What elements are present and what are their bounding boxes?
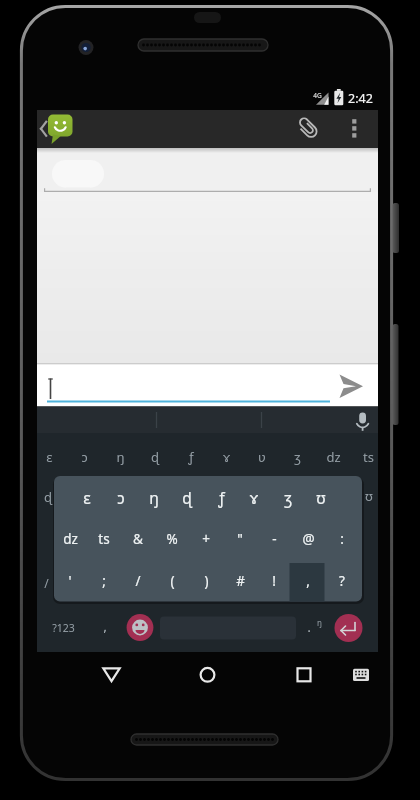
button[interactable] xyxy=(189,520,223,560)
button[interactable] xyxy=(45,612,85,645)
staticText: ts xyxy=(98,530,110,548)
button[interactable] xyxy=(126,612,154,645)
staticText: ƒ xyxy=(188,448,194,466)
button[interactable] xyxy=(155,562,189,601)
staticText: ʊ xyxy=(316,487,326,508)
button[interactable] xyxy=(53,520,87,560)
staticText: , xyxy=(103,618,107,634)
button[interactable] xyxy=(87,520,121,560)
staticText: % xyxy=(166,530,178,548)
button[interactable] xyxy=(242,440,276,475)
staticText: ɛ xyxy=(46,448,53,466)
button[interactable] xyxy=(137,478,170,518)
button[interactable] xyxy=(92,658,131,695)
button[interactable] xyxy=(291,520,325,560)
button[interactable] xyxy=(257,562,291,601)
button[interactable] xyxy=(284,658,323,695)
staticText: ɔ xyxy=(117,487,125,508)
staticText: ?123 xyxy=(52,621,75,635)
staticText: ɖ xyxy=(182,487,192,508)
button[interactable] xyxy=(292,110,322,148)
staticText: ɛ xyxy=(83,487,91,508)
button[interactable] xyxy=(291,562,325,601)
staticText: ' xyxy=(68,572,72,590)
button[interactable] xyxy=(325,520,359,560)
staticText: : xyxy=(340,530,344,548)
button[interactable] xyxy=(160,612,296,645)
staticText: , xyxy=(306,572,310,590)
staticText: ) xyxy=(204,572,209,590)
button[interactable] xyxy=(204,478,237,518)
button[interactable] xyxy=(71,440,105,475)
button[interactable] xyxy=(87,562,121,601)
button[interactable] xyxy=(300,612,330,645)
button[interactable] xyxy=(348,658,374,695)
button[interactable] xyxy=(304,478,337,518)
staticText: ɖ xyxy=(151,448,159,466)
button[interactable] xyxy=(333,612,361,645)
button[interactable] xyxy=(40,110,75,148)
staticText: @ xyxy=(302,530,315,548)
staticText: ʊ xyxy=(365,487,373,505)
button[interactable] xyxy=(237,478,270,518)
button[interactable] xyxy=(104,478,137,518)
staticText: ɖ xyxy=(44,488,52,506)
staticText: ɔ xyxy=(81,448,88,466)
staticText: ɤ xyxy=(223,448,230,466)
staticText: ! xyxy=(272,572,276,590)
button[interactable] xyxy=(310,440,344,475)
button[interactable] xyxy=(53,562,87,601)
staticText: ŋ xyxy=(317,617,322,628)
button[interactable] xyxy=(173,440,207,475)
staticText: 4G xyxy=(313,91,322,100)
staticText: ʒ xyxy=(284,487,292,508)
button[interactable] xyxy=(276,440,310,475)
button[interactable] xyxy=(208,440,242,475)
staticText: ; xyxy=(102,572,106,590)
button[interactable] xyxy=(139,440,173,475)
staticText: ʋ xyxy=(258,448,266,466)
staticText: ʒ xyxy=(294,448,301,466)
button[interactable] xyxy=(90,612,120,645)
button[interactable] xyxy=(350,406,376,433)
button[interactable] xyxy=(155,520,189,560)
button[interactable] xyxy=(271,478,304,518)
staticText: 2:42 xyxy=(348,90,373,107)
staticText: ŋ xyxy=(149,487,159,508)
staticText: dz xyxy=(326,448,341,466)
staticText: & xyxy=(133,530,143,548)
staticText: / xyxy=(135,572,141,590)
button[interactable] xyxy=(325,562,359,601)
staticText: ? xyxy=(339,572,345,590)
button[interactable] xyxy=(340,110,370,148)
button[interactable] xyxy=(223,520,257,560)
button[interactable] xyxy=(344,440,378,475)
button[interactable] xyxy=(189,562,223,601)
staticText: ts xyxy=(363,448,374,466)
button[interactable] xyxy=(70,478,103,518)
staticText: . xyxy=(307,619,311,635)
button[interactable] xyxy=(257,520,291,560)
staticText: / xyxy=(44,575,49,591)
staticText: ( xyxy=(170,572,175,590)
button[interactable] xyxy=(334,370,370,403)
button[interactable] xyxy=(188,658,227,695)
staticText: ŋ xyxy=(116,448,125,466)
staticText: " xyxy=(237,530,243,548)
button[interactable] xyxy=(121,520,155,560)
button[interactable] xyxy=(37,440,71,475)
button[interactable] xyxy=(105,440,139,475)
staticText: ƒ xyxy=(218,487,225,508)
staticText: + xyxy=(202,530,210,548)
button[interactable] xyxy=(121,562,155,601)
button[interactable] xyxy=(223,562,257,601)
staticText: ɤ xyxy=(250,487,258,508)
staticText: # xyxy=(236,572,245,590)
staticText: - xyxy=(272,530,277,548)
staticText: dz xyxy=(63,530,78,548)
button[interactable] xyxy=(171,478,204,518)
